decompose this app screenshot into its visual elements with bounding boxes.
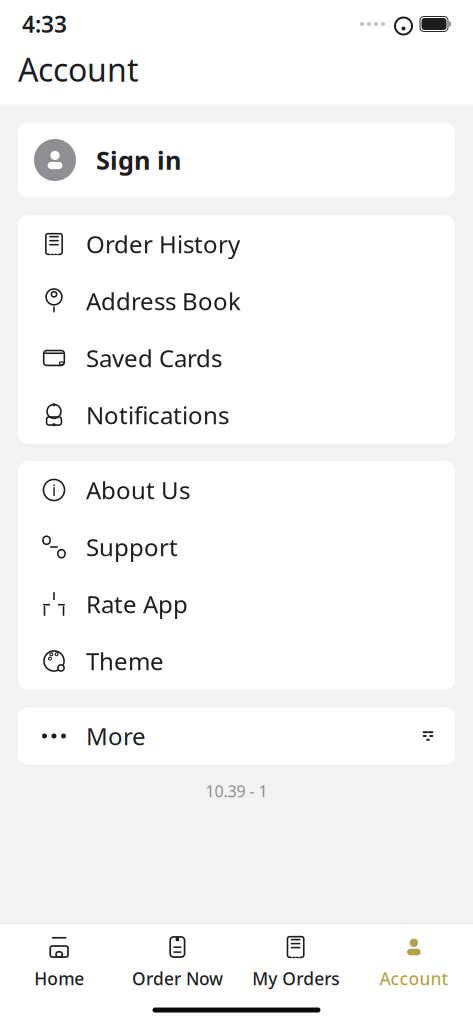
staticText: Theme — [86, 645, 164, 677]
button[interactable]: More — [18, 707, 455, 764]
staticText: Account — [379, 967, 448, 990]
staticText: My Orders — [252, 967, 339, 990]
button[interactable]: Order Now — [118, 924, 236, 996]
staticText: Order History — [86, 228, 240, 260]
staticText: Account — [18, 48, 139, 90]
staticText: About Us — [86, 474, 190, 506]
staticText: i — [52, 479, 56, 501]
button[interactable]: Order History — [18, 215, 455, 272]
button[interactable]: Account — [355, 924, 473, 996]
staticText: Address Book — [86, 285, 241, 317]
staticText: Rate App — [86, 588, 188, 620]
staticText: 4:33 — [22, 9, 67, 39]
staticText: More — [86, 720, 146, 752]
staticText: Support — [86, 531, 178, 563]
staticText: Sign in — [96, 143, 181, 177]
staticText: Order Now — [132, 967, 223, 990]
button[interactable]: My Orders — [236, 924, 355, 996]
button[interactable]: Address Book — [18, 272, 455, 329]
button[interactable]: Rate App — [18, 575, 455, 632]
staticText: Notifications — [86, 399, 229, 431]
button[interactable]: Theme — [18, 632, 455, 689]
button[interactable]: i — [18, 461, 455, 518]
button[interactable]: Support — [18, 518, 455, 575]
staticText: 10.39 - 1 — [205, 780, 267, 802]
button[interactable]: Notifications — [18, 386, 455, 443]
staticText: Home — [34, 967, 84, 990]
button[interactable]: Sign in — [18, 122, 455, 197]
staticText: Saved Cards — [86, 342, 222, 374]
button[interactable]: Saved Cards — [18, 329, 455, 386]
button[interactable]: Home — [0, 924, 118, 996]
